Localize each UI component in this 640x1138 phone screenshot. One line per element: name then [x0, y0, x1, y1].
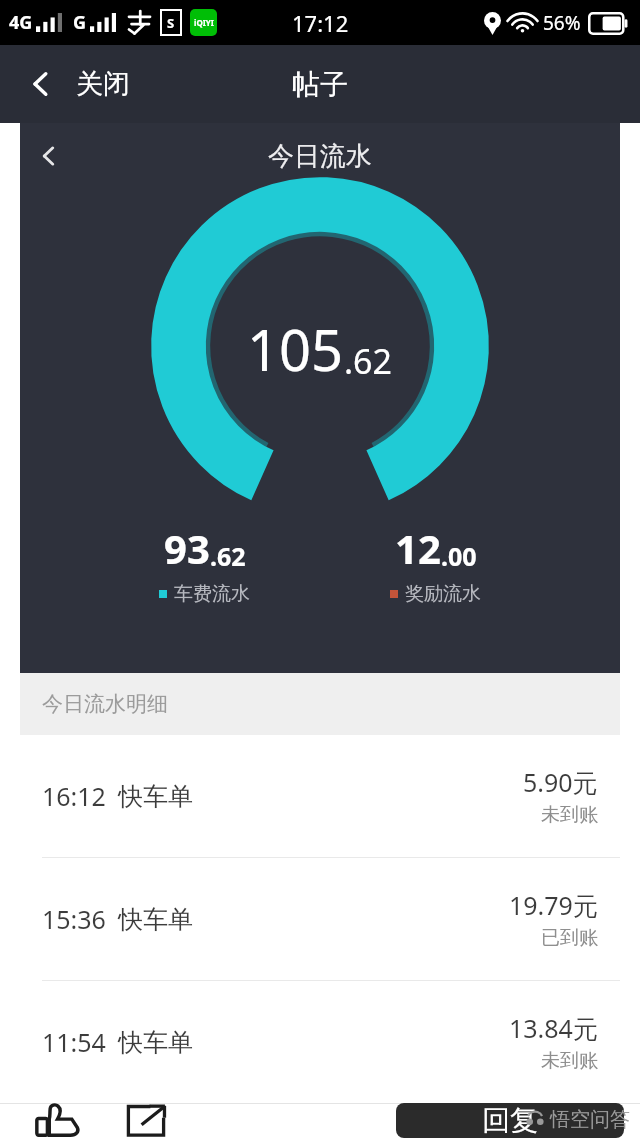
staticText: .62 — [344, 338, 393, 384]
staticText: 17:12 — [292, 8, 349, 38]
staticText: 快车单 — [118, 904, 193, 935]
staticText: 车费流水 — [174, 582, 250, 606]
staticText: 5.90元 — [523, 765, 598, 799]
staticText: 56% — [543, 10, 581, 36]
staticText: G — [73, 10, 87, 35]
button[interactable]: Back — [20, 127, 78, 185]
staticText: 关闭 — [76, 67, 130, 101]
staticText: 11:54 — [42, 1025, 106, 1059]
button[interactable]: Like — [22, 1103, 94, 1138]
button[interactable]: Share — [110, 1103, 182, 1138]
button[interactable]: 16:12 — [0, 735, 640, 857]
staticText: 帖子 — [292, 67, 348, 102]
button[interactable]: 11:54 — [0, 981, 640, 1103]
staticText: 19.79元 — [509, 888, 598, 922]
staticText: .62 — [210, 539, 246, 573]
staticText: 105 — [247, 311, 344, 387]
staticText: 15:36 — [42, 902, 106, 936]
button[interactable]: 15:36 — [0, 858, 640, 980]
staticText: 回复 — [482, 1103, 538, 1138]
staticText: 未到账 — [541, 803, 598, 827]
staticText: .00 — [441, 539, 477, 573]
staticText: 4G — [9, 10, 33, 35]
staticText: 13.84元 — [509, 1011, 598, 1045]
staticText: iQIYI — [194, 17, 214, 28]
button[interactable]: 回复 — [396, 1103, 624, 1138]
staticText: 今日流水 — [268, 140, 372, 173]
button[interactable]: 关闭 — [0, 45, 152, 123]
staticText: 奖励流水 — [405, 582, 481, 606]
staticText: 未到账 — [541, 1049, 598, 1073]
staticText: 今日流水明细 — [42, 691, 168, 717]
staticText: 快车单 — [118, 781, 193, 812]
staticText: 12 — [395, 521, 441, 575]
staticText: 悟空问答 — [550, 1107, 630, 1132]
staticText: 93 — [164, 521, 210, 575]
staticText: 已到账 — [541, 926, 598, 950]
staticText: 16:12 — [42, 779, 106, 813]
staticText: S — [167, 14, 175, 32]
staticText: 快车单 — [118, 1027, 193, 1058]
